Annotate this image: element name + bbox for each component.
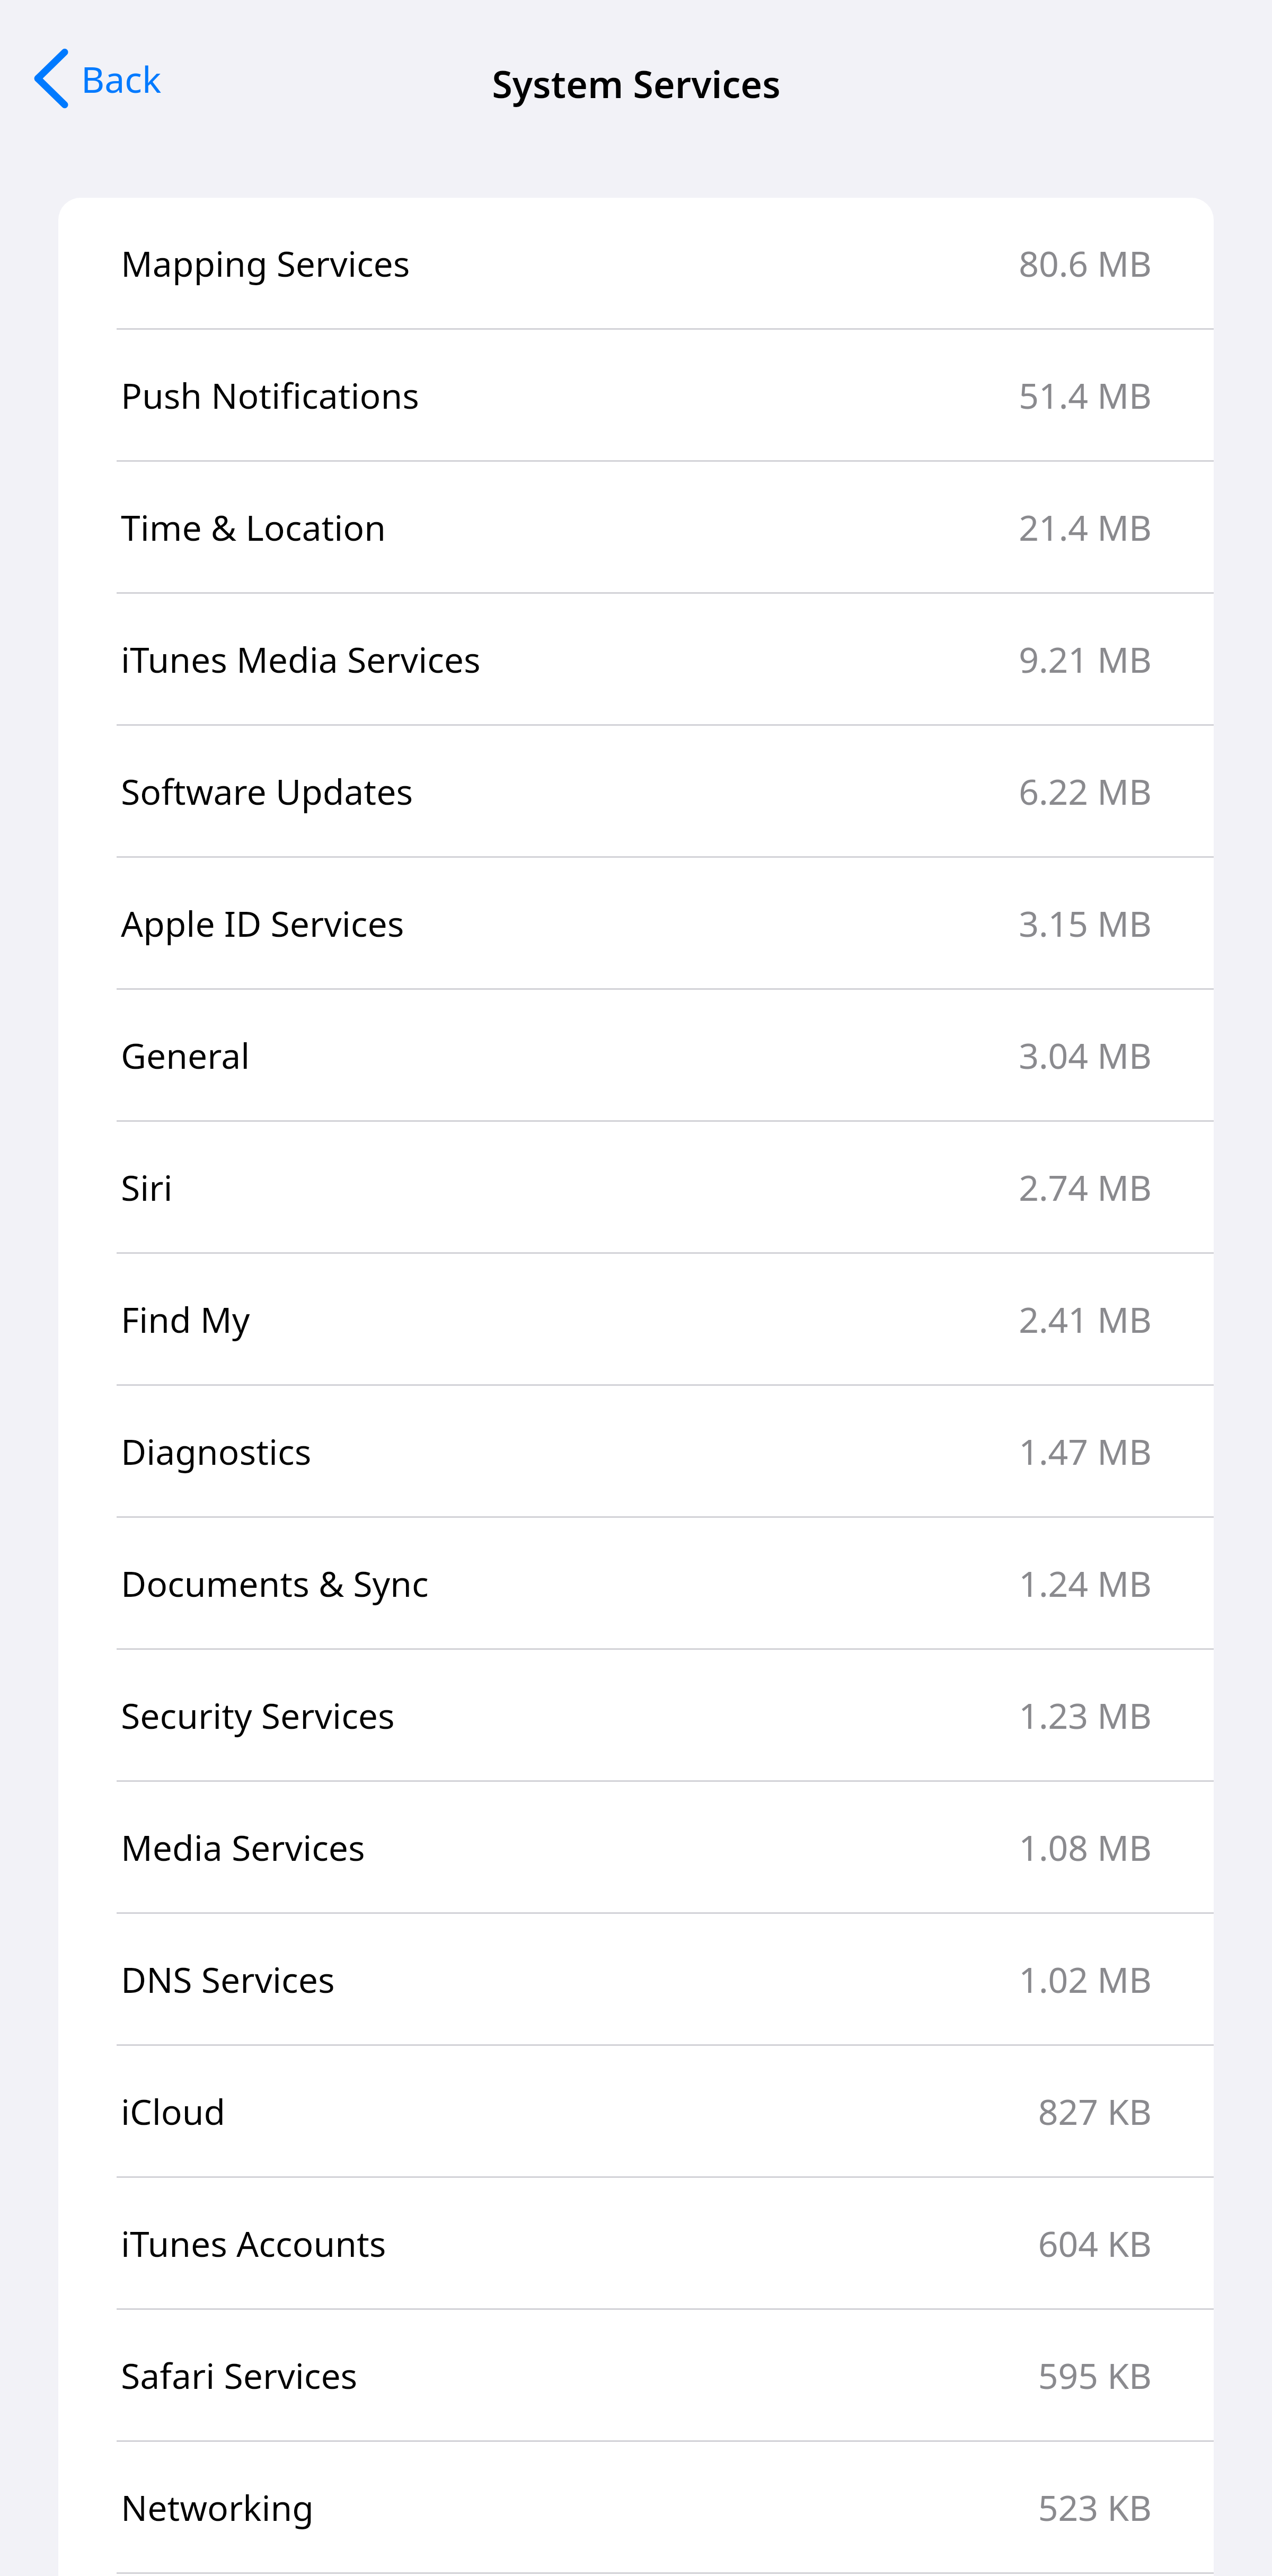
staticText: Find My [121, 1295, 250, 1343]
button[interactable]: General [58, 990, 1214, 1120]
staticText: 2.74 MB [1019, 1163, 1152, 1211]
button[interactable]: DNS Services [58, 1914, 1214, 2044]
button[interactable]: Time & Location [58, 462, 1214, 592]
staticText: DNS Services [121, 1955, 335, 2003]
staticText: Software Updates [121, 767, 413, 815]
staticText: Safari Services [121, 2351, 358, 2399]
staticText: Networking [121, 2483, 314, 2531]
staticText: 1.24 MB [1019, 1559, 1152, 1607]
staticText: Apple ID Services [121, 899, 404, 947]
staticText: 9.21 MB [1019, 635, 1152, 683]
staticText: General [121, 1031, 250, 1079]
staticText: Documents & Sync [121, 1559, 429, 1607]
staticText: 3.04 MB [1019, 1031, 1152, 1079]
staticText: Mapping Services [121, 239, 410, 287]
staticText: System Services [492, 58, 781, 109]
button[interactable]: Networking [58, 2442, 1214, 2572]
staticText: Security Services [121, 1691, 395, 1739]
staticText: 21.4 MB [1019, 503, 1152, 551]
button[interactable]: Find My [58, 1254, 1214, 1384]
button[interactable]: iTunes Accounts [58, 2178, 1214, 2308]
staticText: Media Services [121, 1823, 365, 1871]
button[interactable]: Back [29, 47, 167, 110]
staticText: 1.02 MB [1019, 1955, 1152, 2003]
button[interactable]: Media Services [58, 1782, 1214, 1912]
staticText: iTunes Media Services [121, 635, 481, 683]
staticText: 2.41 MB [1019, 1295, 1152, 1343]
button[interactable]: Siri [58, 1122, 1214, 1252]
button[interactable]: Mapping Services [58, 198, 1214, 328]
button[interactable]: Diagnostics [58, 1386, 1214, 1516]
button[interactable]: iTunes Media Services [58, 594, 1214, 724]
staticText: Diagnostics [121, 1427, 312, 1475]
button[interactable]: iCloud [58, 2046, 1214, 2176]
button[interactable]: Apple ID Services [58, 858, 1214, 988]
staticText: iCloud [121, 2087, 226, 2135]
staticText: Time & Location [121, 503, 386, 551]
button[interactable]: Security Services [58, 1650, 1214, 1780]
staticText: Siri [121, 1163, 173, 1211]
staticText: 51.4 MB [1019, 371, 1152, 419]
staticText: 827 KB [1038, 2087, 1152, 2135]
staticText: 1.47 MB [1019, 1427, 1152, 1475]
staticText: Back [81, 54, 162, 103]
staticText: Push Notifications [121, 371, 419, 419]
staticText: 3.15 MB [1019, 899, 1152, 947]
staticText: 6.22 MB [1019, 767, 1152, 815]
staticText: 595 KB [1038, 2351, 1152, 2399]
button[interactable]: Push Notifications [58, 330, 1214, 460]
staticText: 1.23 MB [1019, 1691, 1152, 1739]
staticText: iTunes Accounts [121, 2219, 386, 2267]
staticText: 80.6 MB [1019, 239, 1152, 287]
button[interactable]: Documents & Sync [58, 1518, 1214, 1648]
button[interactable]: Software Updates [58, 726, 1214, 856]
button[interactable]: Safari Services [58, 2310, 1214, 2440]
staticText: 523 KB [1038, 2483, 1152, 2531]
staticText: 1.08 MB [1019, 1823, 1152, 1871]
staticText: 604 KB [1038, 2219, 1152, 2267]
